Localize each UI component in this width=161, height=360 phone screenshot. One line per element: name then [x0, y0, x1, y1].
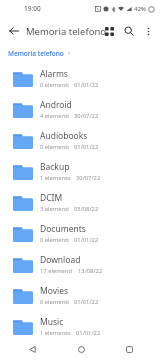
staticText: 0 elementi	[40, 143, 69, 151]
staticText: Alarms	[40, 68, 68, 80]
button[interactable]: Notifications	[0, 342, 161, 360]
staticText: 4 elementi	[40, 112, 69, 120]
staticText: 0 elementi	[40, 81, 69, 89]
staticText: Audiobooks	[40, 130, 88, 142]
staticText: Download	[40, 254, 81, 266]
button[interactable]: More options	[139, 22, 157, 40]
button[interactable]: Android	[0, 94, 161, 125]
staticText: 42%	[134, 5, 146, 13]
button[interactable]: Movies	[0, 280, 161, 311]
staticText: Notifications	[40, 342, 91, 354]
staticText: Backup	[40, 161, 70, 173]
button[interactable]: Backup	[0, 156, 161, 187]
staticText: Music	[40, 316, 64, 328]
button[interactable]: Documents	[0, 218, 161, 249]
button[interactable]: Music	[0, 311, 161, 342]
button[interactable]: Back	[4, 21, 24, 41]
staticText: Memoria telefono	[26, 25, 107, 38]
button[interactable]: Back	[24, 341, 40, 357]
button[interactable]: Grid view	[99, 21, 119, 41]
staticText: 13/08/22	[78, 267, 103, 275]
staticText: 0 elementi	[40, 236, 69, 244]
staticText: 1 elemento	[40, 329, 71, 337]
staticText: 05/08/22	[74, 205, 99, 213]
button[interactable]: Home	[73, 341, 89, 357]
button[interactable]: Alarms	[0, 63, 161, 94]
staticText: DCIM	[40, 192, 63, 204]
button[interactable]: Audiobooks	[0, 125, 161, 156]
staticText: 01/01/22	[74, 81, 99, 89]
staticText: Memoria telefono	[8, 49, 64, 58]
staticText: 1 elemento	[40, 174, 71, 182]
staticText: Documents	[40, 223, 86, 235]
staticText: 19:00	[24, 4, 41, 13]
button[interactable]: Download	[0, 249, 161, 280]
staticText: 01/01/22	[74, 298, 99, 306]
button[interactable]: Search	[119, 21, 139, 41]
staticText: Android	[40, 99, 72, 111]
button[interactable]: Memoria telefono	[8, 49, 64, 58]
button[interactable]: DCIM	[0, 187, 161, 218]
staticText: 01/01/22	[74, 236, 99, 244]
staticText: Movies	[40, 285, 69, 297]
staticText: 17 elementi	[40, 267, 73, 275]
staticText: 01/01/22	[74, 143, 99, 151]
staticText: 3 elementi	[40, 205, 69, 213]
button[interactable]: Recent apps	[121, 341, 137, 357]
staticText: 30/07/22	[74, 112, 99, 120]
staticText: 01/01/22	[76, 329, 101, 337]
staticText: 30/07/22	[76, 174, 101, 182]
staticText: 0 elementi	[40, 298, 69, 306]
